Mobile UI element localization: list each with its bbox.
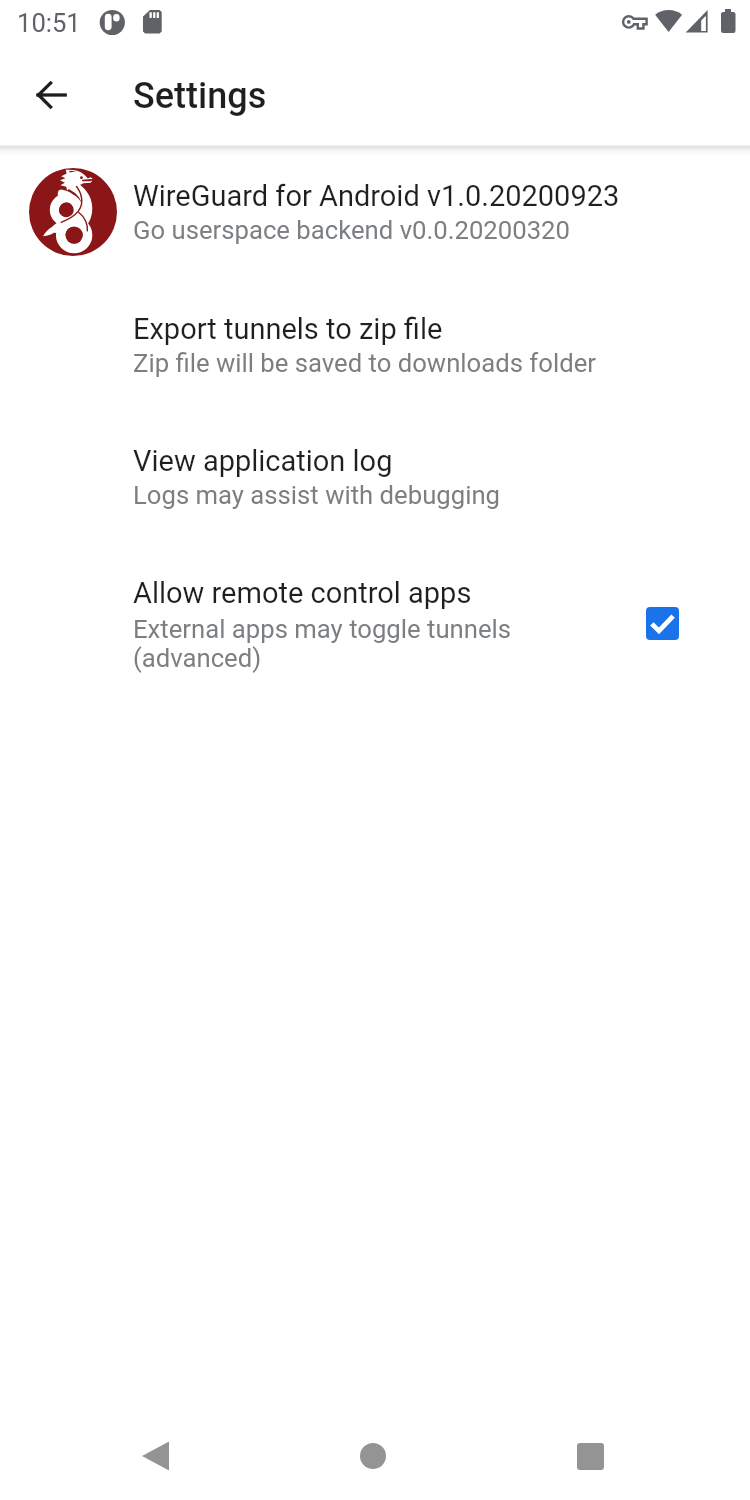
staticText: 10:51 — [17, 8, 81, 38]
staticText: Export tunnels to zip file — [133, 312, 443, 346]
button[interactable]: Export tunnels to zip file — [0, 280, 750, 390]
staticText: Allow remote control apps — [133, 576, 472, 610]
staticText: Logs may assist with debugging — [133, 480, 501, 510]
staticText: Zip file will be saved to downloads fold… — [133, 348, 596, 378]
staticText: External apps may toggle tunnels (advanc… — [133, 614, 512, 674]
staticText: Settings — [133, 75, 267, 117]
staticText: WireGuard for Android v1.0.20200923 — [133, 179, 620, 213]
button[interactable]: Back — [112, 1412, 200, 1500]
button[interactable]: Navigate up — [4, 48, 98, 142]
button[interactable]: Recent apps — [546, 1412, 634, 1500]
button[interactable]: View application log — [0, 412, 750, 522]
button[interactable]: Home — [329, 1412, 417, 1500]
button[interactable]: WireGuard for Android v1.0.20200923 — [0, 148, 750, 276]
staticText: Go userspace backend v0.0.20200320 — [133, 215, 570, 245]
staticText: View application log — [133, 444, 393, 478]
button[interactable]: Allow remote control apps — [0, 544, 750, 672]
